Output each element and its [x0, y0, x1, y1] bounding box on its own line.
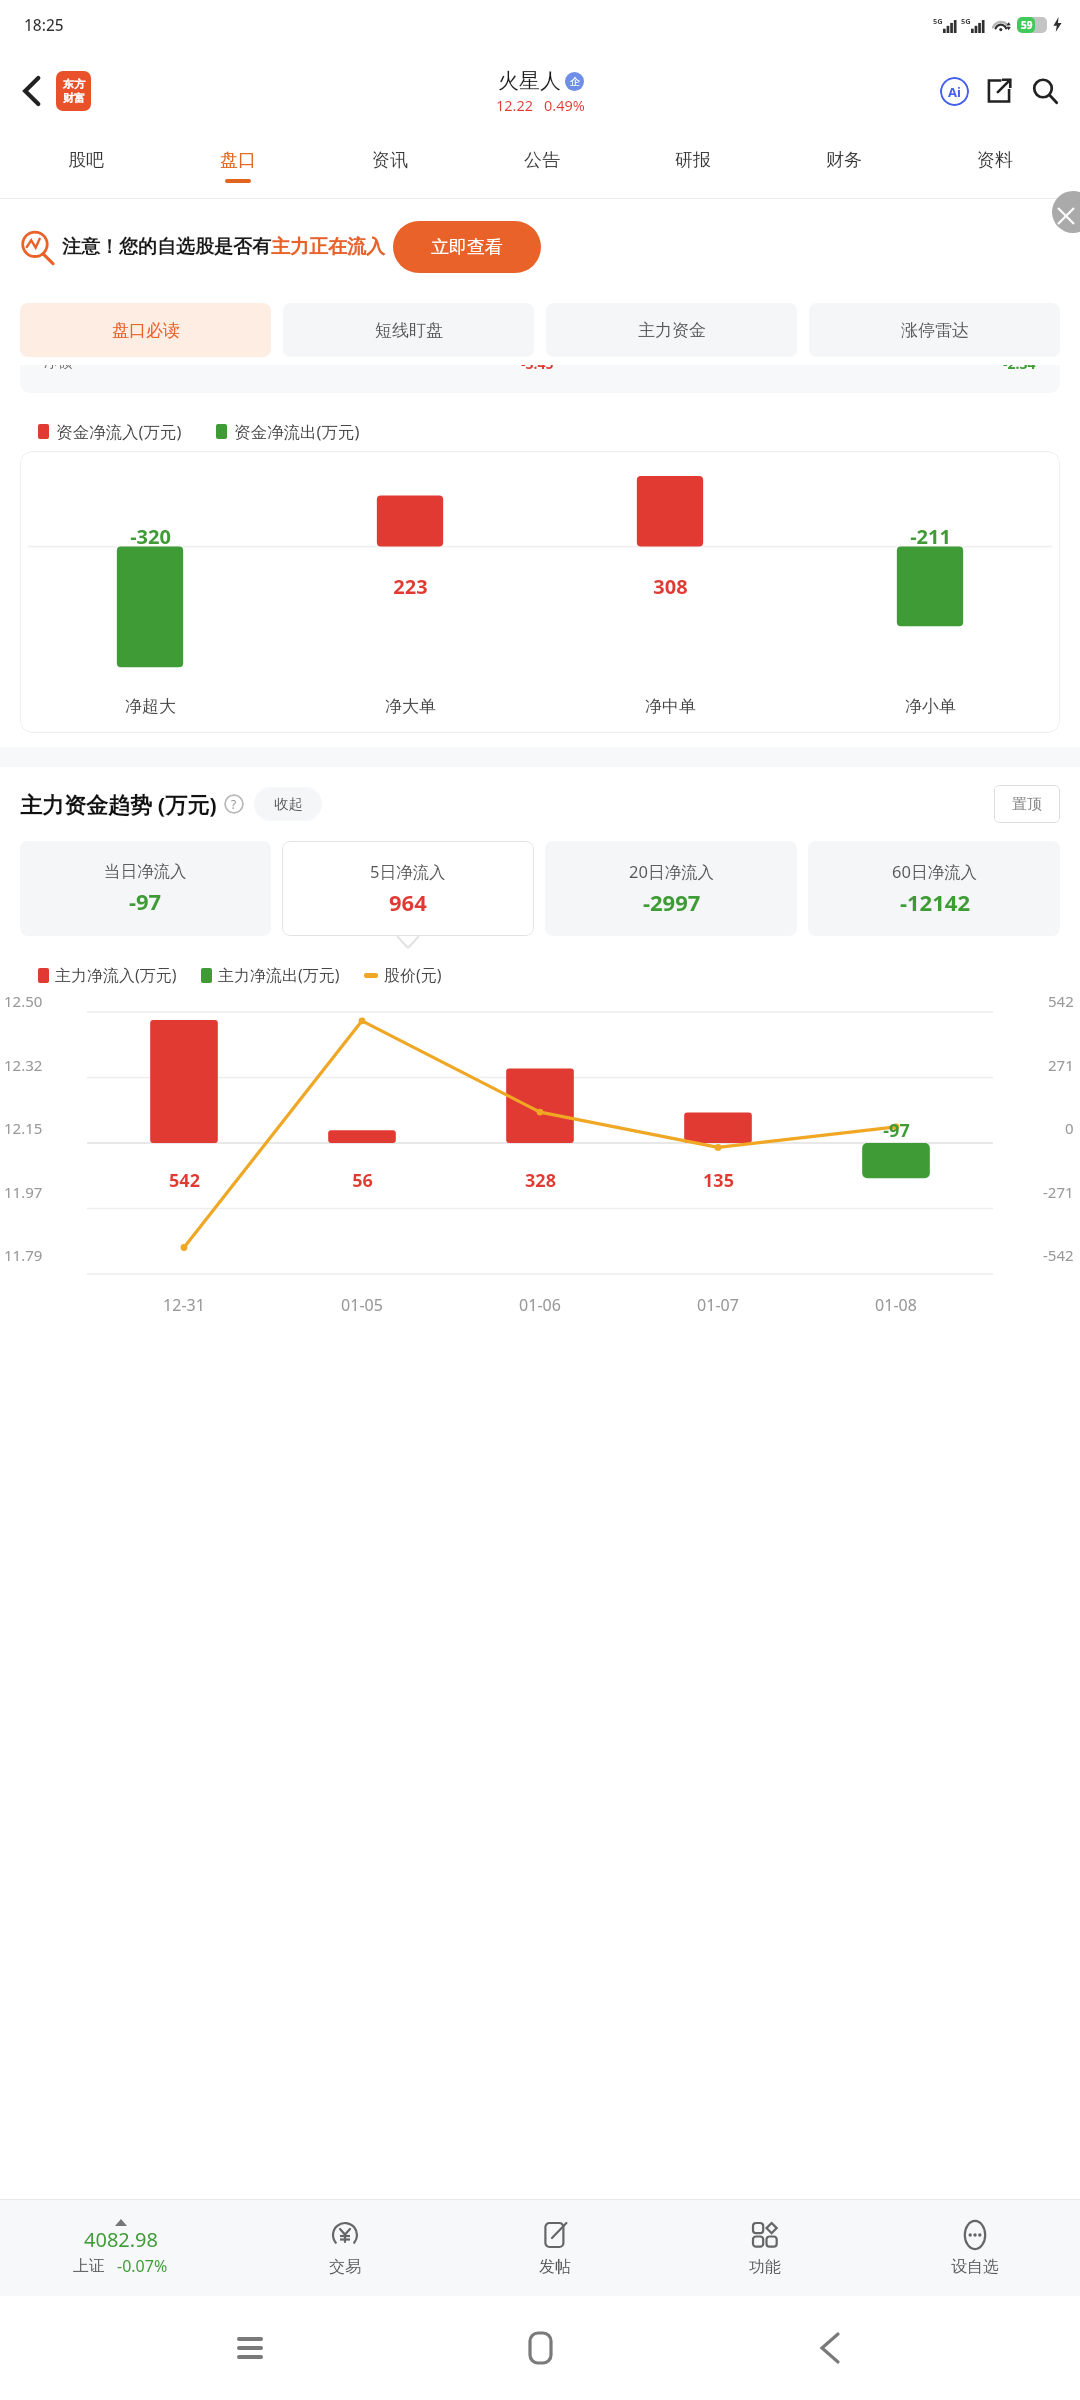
- staticText: ?: [231, 796, 237, 812]
- button[interactable]: Back: [790, 2308, 870, 2388]
- staticText: 企: [570, 75, 580, 88]
- staticText: Ai: [948, 83, 961, 101]
- button[interactable]: 财务: [768, 133, 919, 199]
- staticText: 股吧: [68, 149, 104, 172]
- staticText: 立即查看: [431, 236, 503, 259]
- staticText: -0.07%: [117, 2255, 168, 2277]
- staticText: 5G: [961, 16, 971, 26]
- button[interactable]: 股吧: [10, 133, 162, 199]
- staticText: 5G: [933, 16, 943, 26]
- staticText: 您的自选股是否有: [119, 235, 271, 259]
- button[interactable]: 当日净流入: [20, 841, 271, 936]
- staticText: 研报: [675, 149, 711, 172]
- staticText: 财务: [826, 149, 862, 172]
- button[interactable]: 资料: [919, 133, 1070, 199]
- button[interactable]: Back: [10, 69, 54, 113]
- button[interactable]: 功能: [660, 2200, 870, 2296]
- staticText: 财富: [63, 91, 85, 105]
- button[interactable]: Recent apps: [210, 2308, 290, 2388]
- button[interactable]: 短线盯盘: [283, 303, 534, 357]
- staticText: 净超大: [125, 696, 176, 717]
- staticText: 净额: [44, 365, 72, 372]
- staticText: -2997: [643, 887, 701, 917]
- staticText: 盘口必读: [112, 320, 180, 341]
- staticText: 设自选: [951, 2257, 999, 2277]
- button[interactable]: 公告: [466, 133, 617, 199]
- button[interactable]: 发帖: [450, 2200, 660, 2296]
- staticText: 01-05: [341, 1294, 383, 1316]
- staticText: 60日净流入: [892, 860, 977, 883]
- staticText: -3.45: [521, 365, 554, 373]
- button[interactable]: 盘口: [162, 133, 314, 199]
- staticText: 主力正在流入: [271, 235, 385, 259]
- button[interactable]: Search: [1022, 68, 1068, 114]
- button[interactable]: 20日净流入: [545, 841, 797, 936]
- staticText: 56: [352, 1168, 373, 1193]
- staticText: 注意！: [62, 235, 119, 259]
- staticText: 11.97: [4, 1182, 43, 1202]
- staticText: 股价(元): [384, 964, 442, 986]
- button[interactable]: AI assistant: [932, 69, 976, 113]
- staticText: 主力资金趋势 (万元): [20, 789, 217, 819]
- staticText: 火星人: [498, 68, 561, 94]
- button[interactable]: 4082.98: [0, 2200, 240, 2296]
- button[interactable]: 交易: [240, 2200, 450, 2296]
- button[interactable]: 盘口必读: [20, 303, 271, 357]
- button[interactable]: 研报: [617, 133, 768, 199]
- staticText: 20日净流入: [629, 860, 714, 883]
- staticText: 11.79: [4, 1245, 43, 1265]
- button[interactable]: 主力资金: [546, 303, 797, 357]
- button[interactable]: 置顶: [994, 785, 1060, 823]
- staticText: 公告: [524, 149, 560, 172]
- staticText: 置顶: [1012, 795, 1042, 814]
- staticText: 01-08: [875, 1294, 917, 1316]
- button[interactable]: 60日净流入: [808, 841, 1060, 936]
- button[interactable]: Share: [976, 68, 1022, 114]
- button[interactable]: 涨停雷达: [809, 303, 1060, 357]
- staticText: -211: [910, 523, 951, 550]
- staticText: 4082.98: [84, 2226, 158, 2253]
- staticText: 上证: [73, 2256, 105, 2276]
- staticText: 盘口: [220, 149, 256, 172]
- staticText: 542: [169, 1168, 200, 1193]
- staticText: 主力资金: [638, 320, 706, 341]
- button[interactable]: 资讯: [314, 133, 466, 199]
- staticText: 135: [703, 1168, 734, 1193]
- staticText: 短线盯盘: [375, 320, 443, 341]
- staticText: 542: [1048, 991, 1074, 1011]
- staticText: 涨停雷达: [901, 320, 969, 341]
- staticText: -97: [883, 1118, 910, 1143]
- staticText: 东方: [63, 77, 85, 91]
- staticText: -2.34: [1003, 365, 1036, 373]
- staticText: 净中单: [645, 696, 696, 717]
- staticText: 12.22: [496, 95, 534, 115]
- staticText: 发帖: [539, 2257, 571, 2277]
- button[interactable]: Close: [1052, 191, 1080, 233]
- button[interactable]: Home: [500, 2308, 580, 2388]
- button[interactable]: East Money: [56, 71, 91, 111]
- staticText: 223: [393, 573, 428, 600]
- staticText: 主力净流入(万元): [55, 964, 177, 986]
- staticText: -542: [1043, 1245, 1074, 1265]
- button[interactable]: 收起: [254, 787, 322, 821]
- staticText: 5日净流入: [370, 860, 446, 883]
- staticText: 净小单: [905, 696, 956, 717]
- staticText: 59: [1021, 18, 1033, 32]
- staticText: 12.32: [4, 1055, 43, 1075]
- staticText: 主力净流出(万元): [218, 964, 340, 986]
- staticText: 12.50: [4, 991, 43, 1011]
- button[interactable]: 5日净流入: [282, 841, 534, 936]
- staticText: 功能: [749, 2257, 781, 2277]
- staticText: -97: [129, 886, 162, 916]
- staticText: 964: [389, 887, 427, 917]
- staticText: -320: [130, 523, 171, 550]
- button[interactable]: Help: [224, 794, 244, 814]
- button[interactable]: 立即查看: [393, 221, 541, 273]
- staticText: 当日净流入: [104, 861, 187, 882]
- staticText: 308: [653, 573, 688, 600]
- button[interactable]: 设自选: [870, 2200, 1080, 2296]
- staticText: 资金净流入(万元): [56, 420, 182, 443]
- staticText: -271: [1043, 1182, 1074, 1202]
- staticText: 资讯: [372, 149, 408, 172]
- staticText: -12142: [900, 887, 970, 917]
